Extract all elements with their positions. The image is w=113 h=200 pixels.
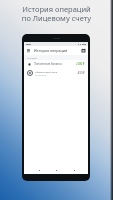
staticText: История операций по Лицевому счету xyxy=(0,4,113,23)
staticText: Сегодня xyxy=(27,56,38,59)
staticText: Пополнение баланса xyxy=(34,62,76,66)
button[interactable]: Home xyxy=(53,167,59,173)
button[interactable]: Абонентская плата xyxy=(24,68,88,78)
button[interactable]: Back xyxy=(36,167,42,173)
staticText: -450 ₽ xyxy=(77,71,85,75)
staticText: 01.09.2019 xyxy=(35,74,47,77)
button[interactable]: Menu xyxy=(26,48,31,53)
button[interactable]: Recents xyxy=(71,167,77,173)
button[interactable]: Calendar xyxy=(81,48,86,53)
staticText: +500 ₽ xyxy=(76,62,85,66)
staticText: Абонентская плата xyxy=(35,70,58,73)
staticText: История операций xyxy=(34,48,68,53)
button[interactable]: Пополнение баланса xyxy=(24,60,88,68)
